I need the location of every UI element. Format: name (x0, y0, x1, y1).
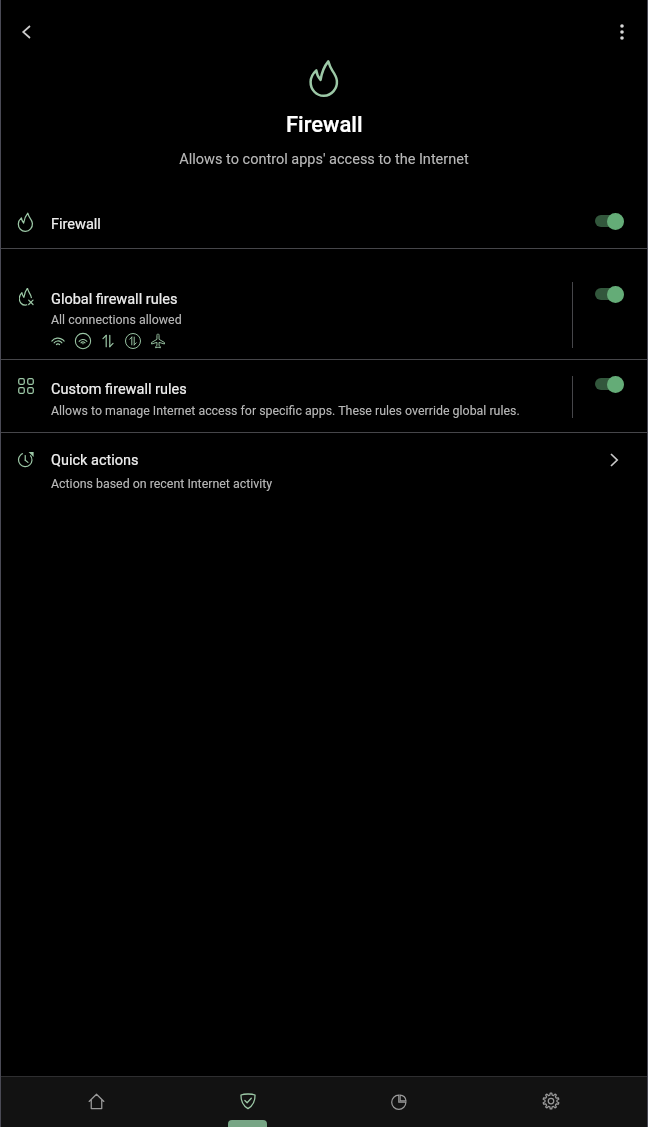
staticText: Firewall (286, 112, 363, 138)
button[interactable]: Global firewall rules (0, 249, 648, 360)
staticText: Allows to manage Internet access for spe… (51, 403, 520, 418)
staticText: All connections allowed (51, 312, 182, 327)
button[interactable]: Back (2, 8, 50, 56)
staticText: Global firewall rules (51, 291, 178, 308)
button[interactable]: Toggle (595, 375, 624, 393)
staticText: Custom firewall rules (51, 381, 187, 398)
button[interactable]: Firewall (0, 190, 648, 249)
staticText: Allows to control apps' access to the In… (179, 151, 469, 168)
button[interactable]: Settings (475, 1077, 627, 1127)
button[interactable]: Quick actions (0, 433, 648, 505)
button[interactable]: Firewall (172, 1077, 323, 1127)
button[interactable]: Toggle (595, 212, 624, 230)
staticText: Quick actions (51, 452, 139, 469)
staticText: Firewall (51, 216, 101, 233)
button[interactable]: Home (21, 1077, 172, 1127)
button[interactable]: Toggle (595, 285, 624, 303)
button[interactable]: More options (598, 8, 646, 56)
staticText: Actions based on recent Internet activit… (51, 476, 273, 491)
button[interactable]: Statistics (323, 1077, 475, 1127)
button[interactable]: Custom firewall rules (0, 360, 648, 433)
